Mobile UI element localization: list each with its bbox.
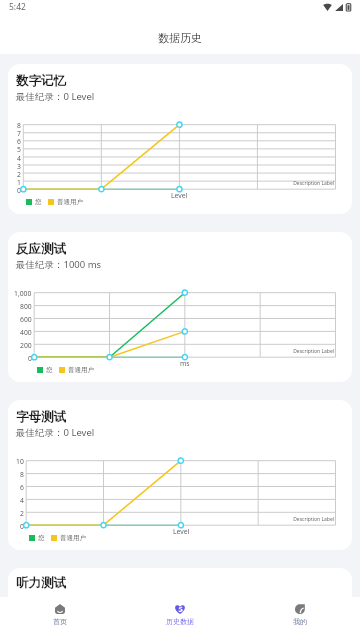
- staticText: 800: [20, 302, 32, 311]
- staticText: 10: [16, 457, 24, 466]
- staticText: 最佳纪录：0 Level: [16, 90, 95, 103]
- staticText: 2: [20, 509, 24, 518]
- staticText: 反应测试: [16, 241, 66, 257]
- staticText: 普通用户: [60, 534, 86, 542]
- staticText: 8: [20, 470, 24, 479]
- staticText: 历史数据: [166, 617, 194, 626]
- staticText: 1,000: [14, 289, 32, 298]
- button[interactable]: 字母测试: [8, 400, 352, 550]
- staticText: 3: [17, 162, 21, 171]
- button[interactable]: 反应测试: [8, 232, 352, 382]
- staticText: 字母测试: [16, 409, 66, 425]
- staticText: 600: [20, 315, 32, 324]
- staticText: 最佳纪录：1000 ms: [16, 258, 102, 271]
- staticText: 8: [17, 121, 21, 130]
- staticText: 首页: [53, 617, 67, 626]
- staticText: Description Label: [286, 180, 334, 187]
- staticText: 您: [35, 198, 42, 206]
- staticText: 我的: [293, 617, 307, 626]
- staticText: Description Label: [286, 516, 334, 523]
- staticText: 6: [20, 483, 24, 492]
- staticText: 0: [28, 354, 32, 363]
- staticText: 5:42: [9, 1, 26, 13]
- staticText: 数据历史: [158, 31, 202, 45]
- staticText: Description Label: [286, 348, 334, 355]
- staticText: 普通用户: [68, 366, 94, 374]
- staticText: 4: [20, 496, 24, 505]
- staticText: Level: [173, 527, 190, 536]
- staticText: 数字记忆: [16, 73, 66, 89]
- staticText: 200: [20, 341, 32, 350]
- staticText: 400: [20, 328, 32, 337]
- staticText: 6: [17, 137, 21, 146]
- staticText: 您: [46, 366, 53, 374]
- button[interactable]: History data: [120, 597, 240, 638]
- staticText: 7: [17, 129, 21, 138]
- staticText: 0: [20, 522, 24, 531]
- staticText: 听力测试: [16, 575, 66, 591]
- staticText: 普通用户: [57, 198, 83, 206]
- staticText: 0: [17, 186, 21, 195]
- staticText: 2: [17, 170, 21, 179]
- staticText: 您: [38, 534, 45, 542]
- button[interactable]: 数字记忆: [8, 64, 352, 214]
- staticText: 5: [17, 145, 21, 154]
- button[interactable]: Profile: [240, 597, 360, 638]
- staticText: 最佳纪录：0 Level: [16, 426, 95, 439]
- staticText: ms: [180, 359, 190, 368]
- staticText: 1: [17, 178, 21, 187]
- staticText: 4: [17, 154, 21, 163]
- button[interactable]: 听力测试: [8, 568, 352, 597]
- staticText: Level: [171, 191, 188, 200]
- button[interactable]: Home: [0, 597, 120, 638]
